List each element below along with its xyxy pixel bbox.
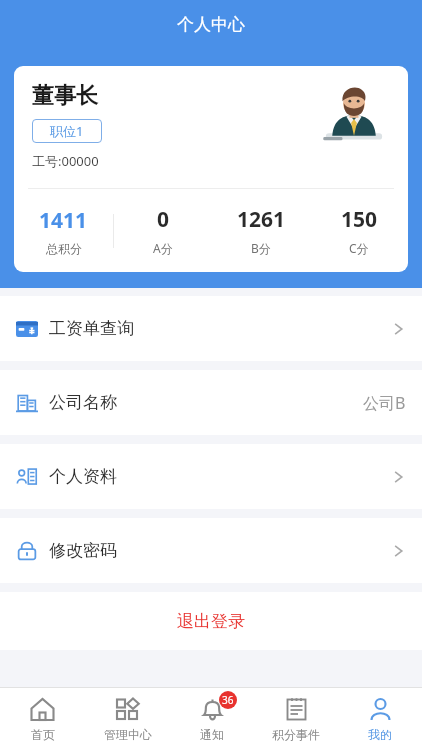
staticText: 公司名称 <box>49 392 117 413</box>
staticText: 退出登录 <box>177 611 245 632</box>
staticText: 1261 <box>237 205 286 234</box>
staticText: 工号:00000 <box>32 152 99 170</box>
staticText: 修改密码 <box>49 540 117 561</box>
button[interactable]: 个人资料 <box>0 444 422 509</box>
button[interactable]: 我的 <box>338 688 422 750</box>
staticText: 总积分 <box>46 241 82 256</box>
staticText: A分 <box>153 240 173 256</box>
staticText: 积分事件 <box>272 727 320 742</box>
button[interactable]: 公司名称 <box>0 370 422 435</box>
button[interactable]: 退出登录 <box>0 592 422 650</box>
staticText: 个人资料 <box>49 466 117 487</box>
button[interactable]: 修改密码 <box>0 518 422 583</box>
staticText: 我的 <box>368 727 392 742</box>
staticText: 个人中心 <box>0 14 422 35</box>
staticText: 管理中心 <box>104 727 152 742</box>
button[interactable]: 积分事件 <box>254 688 338 750</box>
staticText: 公司B <box>363 392 406 414</box>
staticText: 通知 <box>200 727 224 742</box>
button[interactable]: 通知 <box>170 688 254 750</box>
staticText: 1411 <box>39 206 88 235</box>
staticText: 董事长 <box>32 82 98 110</box>
staticText: 首页 <box>31 727 55 742</box>
staticText: 36 <box>222 693 234 707</box>
staticText: C分 <box>349 240 369 256</box>
staticText: 150 <box>341 205 378 234</box>
staticText: B分 <box>251 240 271 256</box>
button[interactable]: 工资单查询 <box>0 296 422 361</box>
staticText: 职位1 <box>50 122 84 140</box>
staticText: 工资单查询 <box>49 318 134 339</box>
button[interactable]: 管理中心 <box>85 688 170 750</box>
button[interactable]: 首页 <box>0 688 85 750</box>
staticText: 0 <box>157 205 170 234</box>
